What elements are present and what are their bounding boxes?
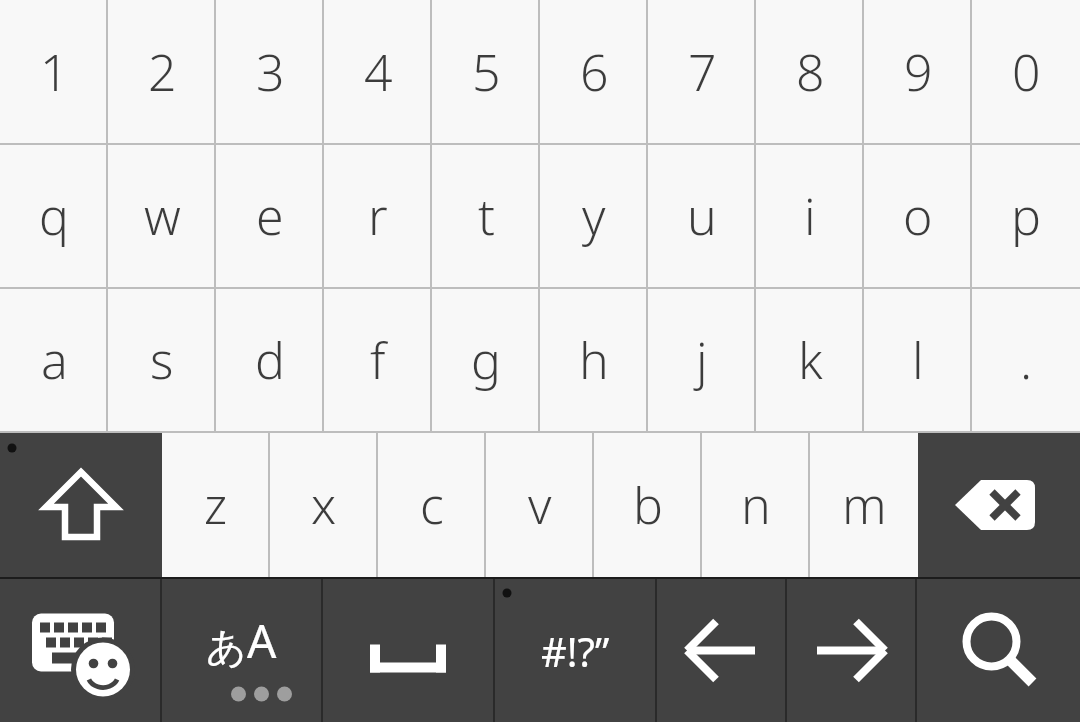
- button[interactable]: #!?”: [495, 579, 655, 722]
- button[interactable]: 9: [864, 0, 972, 143]
- staticText: g: [471, 326, 501, 394]
- button[interactable]: z: [162, 433, 270, 577]
- button[interactable]: 4: [324, 0, 432, 143]
- button[interactable]: Emoji keyboard: [0, 579, 160, 722]
- staticText: 8: [796, 38, 825, 106]
- button[interactable]: g: [432, 289, 540, 431]
- staticText: 4: [364, 38, 393, 106]
- button[interactable]: 6: [540, 0, 648, 143]
- staticText: e: [256, 182, 284, 250]
- button[interactable]: 2: [108, 0, 216, 143]
- button[interactable]: .: [972, 289, 1080, 431]
- button[interactable]: l: [864, 289, 972, 431]
- staticText: s: [150, 326, 174, 394]
- button[interactable]: s: [108, 289, 216, 431]
- button[interactable]: Space: [323, 579, 493, 722]
- button[interactable]: i: [756, 145, 864, 287]
- button[interactable]: 1: [0, 0, 108, 143]
- staticText: .: [1020, 326, 1033, 394]
- button[interactable]: あ: [162, 579, 321, 722]
- staticText: 9: [904, 38, 933, 106]
- staticText: k: [798, 326, 823, 394]
- button[interactable]: j: [648, 289, 756, 431]
- staticText: z: [204, 471, 228, 539]
- button[interactable]: Backspace: [918, 433, 1080, 577]
- staticText: f: [370, 326, 386, 394]
- staticText: A: [247, 609, 277, 672]
- button[interactable]: t: [432, 145, 540, 287]
- button[interactable]: r: [324, 145, 432, 287]
- staticText: 5: [472, 38, 501, 106]
- button[interactable]: e: [216, 145, 324, 287]
- staticText: 0: [1012, 38, 1041, 106]
- button[interactable]: 7: [648, 0, 756, 143]
- button[interactable]: 5: [432, 0, 540, 143]
- button[interactable]: m: [810, 433, 918, 577]
- staticText: r: [368, 182, 388, 250]
- staticText: l: [912, 326, 924, 394]
- staticText: h: [579, 326, 609, 394]
- button[interactable]: q: [0, 145, 108, 287]
- button[interactable]: h: [540, 289, 648, 431]
- button[interactable]: a: [0, 289, 108, 431]
- staticText: m: [842, 471, 887, 539]
- staticText: 7: [688, 38, 717, 106]
- staticText: 1: [40, 38, 69, 106]
- staticText: c: [420, 471, 444, 539]
- button[interactable]: Move cursor right: [787, 579, 915, 722]
- button[interactable]: u: [648, 145, 756, 287]
- staticText: u: [687, 182, 717, 250]
- button[interactable]: p: [972, 145, 1080, 287]
- staticText: b: [633, 471, 663, 539]
- staticText: i: [804, 182, 816, 250]
- staticText: v: [528, 471, 552, 539]
- button[interactable]: b: [594, 433, 702, 577]
- button[interactable]: 3: [216, 0, 324, 143]
- staticText: 6: [580, 38, 609, 106]
- staticText: 2: [148, 38, 177, 106]
- button[interactable]: k: [756, 289, 864, 431]
- button[interactable]: 0: [972, 0, 1080, 143]
- button[interactable]: Shift: [0, 433, 162, 577]
- button[interactable]: Search: [917, 579, 1080, 722]
- staticText: n: [741, 471, 771, 539]
- staticText: a: [41, 326, 68, 394]
- button[interactable]: c: [378, 433, 486, 577]
- staticText: x: [311, 471, 337, 539]
- staticText: o: [903, 182, 933, 250]
- button[interactable]: Move cursor left: [657, 579, 785, 722]
- staticText: 3: [256, 38, 285, 106]
- staticText: あ: [206, 622, 247, 672]
- button[interactable]: d: [216, 289, 324, 431]
- staticText: t: [478, 182, 495, 250]
- staticText: q: [39, 182, 69, 250]
- staticText: d: [255, 326, 285, 394]
- button[interactable]: y: [540, 145, 648, 287]
- button[interactable]: f: [324, 289, 432, 431]
- button[interactable]: w: [108, 145, 216, 287]
- staticText: p: [1011, 182, 1041, 250]
- staticText: y: [582, 182, 606, 250]
- staticText: #!?”: [541, 624, 610, 678]
- button[interactable]: 8: [756, 0, 864, 143]
- button[interactable]: o: [864, 145, 972, 287]
- button[interactable]: n: [702, 433, 810, 577]
- staticText: w: [144, 182, 181, 250]
- button[interactable]: v: [486, 433, 594, 577]
- button[interactable]: x: [270, 433, 378, 577]
- staticText: j: [696, 326, 708, 394]
